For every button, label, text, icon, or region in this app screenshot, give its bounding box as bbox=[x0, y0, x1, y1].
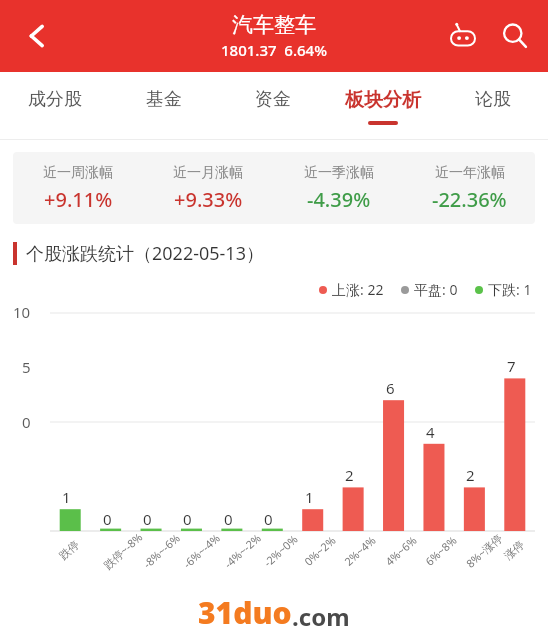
staticText: 0%~2% bbox=[301, 532, 339, 569]
button[interactable]: 基金 bbox=[109, 72, 218, 140]
staticText: 6 bbox=[386, 378, 395, 398]
staticText: 5 bbox=[22, 357, 31, 377]
staticText: 7 bbox=[507, 356, 516, 376]
staticText: 10 bbox=[13, 302, 31, 322]
staticText: 2 bbox=[345, 465, 354, 485]
staticText: -22.36% bbox=[432, 186, 507, 213]
staticText: 近一周涨幅 bbox=[43, 164, 113, 182]
staticText: -2%~0% bbox=[260, 531, 301, 570]
staticText: 0 bbox=[22, 412, 31, 432]
staticText: 4 bbox=[426, 422, 435, 442]
staticText: 0 bbox=[143, 509, 152, 529]
staticText: 成分股 bbox=[28, 88, 82, 111]
staticText: +9.11% bbox=[44, 186, 113, 213]
staticText: -4%~-2% bbox=[221, 530, 264, 571]
button[interactable]: 近一年涨幅 bbox=[404, 164, 535, 213]
button[interactable]: 论股 bbox=[438, 72, 548, 140]
button[interactable]: AI assistant bbox=[442, 15, 484, 57]
staticText: 论股 bbox=[475, 88, 511, 111]
staticText: 基金 bbox=[146, 88, 182, 111]
staticText: 4%~6% bbox=[382, 532, 420, 569]
staticText: 近一季涨幅 bbox=[304, 164, 374, 182]
button[interactable]: 资金 bbox=[218, 72, 328, 140]
staticText: 上涨: 22 bbox=[332, 280, 384, 299]
staticText: 0 bbox=[103, 509, 112, 529]
staticText: 板块分析 bbox=[345, 88, 421, 112]
staticText: 涨停 bbox=[501, 537, 527, 562]
staticText: 1 bbox=[62, 487, 71, 507]
staticText: 资金 bbox=[255, 88, 291, 111]
staticText: 跌停~-8% bbox=[100, 529, 146, 572]
button[interactable]: 成分股 bbox=[0, 72, 109, 140]
staticText: 0 bbox=[224, 509, 233, 529]
staticText: 平盘: 0 bbox=[414, 280, 458, 299]
button[interactable]: 上涨: 22 bbox=[319, 280, 384, 299]
staticText: 0 bbox=[183, 509, 192, 529]
button[interactable]: 近一周涨幅 bbox=[13, 164, 143, 213]
staticText: 2 bbox=[466, 465, 475, 485]
staticText: 6%~8% bbox=[422, 532, 460, 569]
staticText: -4.39% bbox=[307, 186, 371, 213]
staticText: 下跌: 1 bbox=[488, 280, 532, 299]
staticText: .com bbox=[292, 600, 350, 633]
staticText: 汽车整车 bbox=[232, 12, 316, 38]
button[interactable]: 板块分析 bbox=[328, 72, 438, 140]
button[interactable]: 近一月涨幅 bbox=[143, 164, 273, 213]
staticText: 近一月涨幅 bbox=[173, 164, 243, 182]
button[interactable]: 近一季涨幅 bbox=[273, 164, 404, 213]
button[interactable]: 平盘: 0 bbox=[401, 280, 458, 299]
staticText: 跌停 bbox=[56, 537, 82, 562]
staticText: +9.33% bbox=[174, 186, 243, 213]
button[interactable]: 下跌: 1 bbox=[475, 280, 532, 299]
staticText: -6%~-4% bbox=[180, 530, 223, 571]
staticText: 1 bbox=[305, 487, 314, 507]
button[interactable]: Back bbox=[14, 13, 60, 59]
staticText: 31duo bbox=[198, 592, 292, 633]
button[interactable]: Search bbox=[494, 15, 536, 57]
staticText: 1801.37 6.64% bbox=[221, 40, 327, 60]
staticText: -8%~-6% bbox=[140, 530, 183, 571]
staticText: 0 bbox=[264, 509, 273, 529]
staticText: 2%~4% bbox=[341, 532, 379, 569]
staticText: 近一年涨幅 bbox=[435, 164, 505, 182]
staticText: 个股涨跌统计（2022-05-13） bbox=[26, 241, 264, 266]
staticText: 8%~涨停 bbox=[463, 530, 505, 571]
